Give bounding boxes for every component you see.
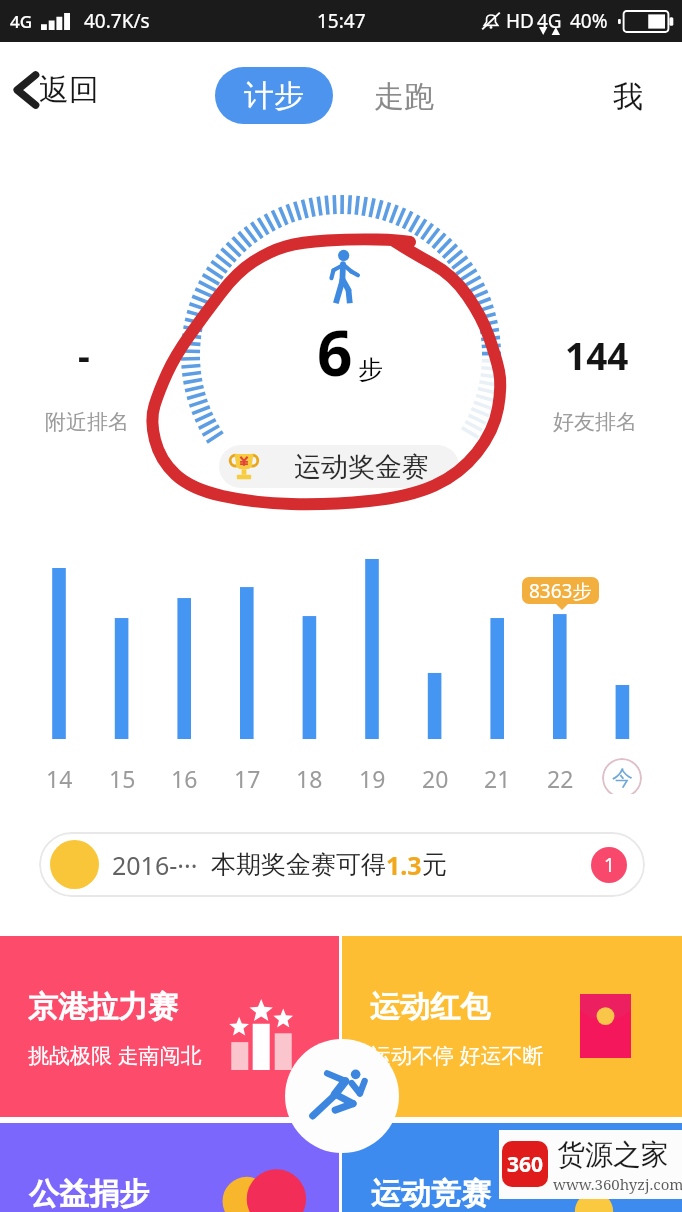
staticText: 15 bbox=[109, 763, 136, 794]
button[interactable]: Start running bbox=[285, 1039, 399, 1153]
button[interactable]: 走跑 bbox=[368, 70, 440, 124]
staticText: 今 bbox=[612, 765, 633, 791]
staticText: HD bbox=[506, 8, 534, 34]
staticText: 1.3 bbox=[386, 848, 422, 882]
button[interactable]: 公益捐步 bbox=[0, 1123, 339, 1212]
staticText: 运动红包 bbox=[370, 988, 490, 1026]
staticText: 40.7K/s bbox=[84, 8, 150, 34]
staticText: 20 bbox=[422, 763, 449, 794]
staticText: 本期奖金赛可得 bbox=[211, 849, 386, 880]
staticText: www.360hyzj.com bbox=[553, 1174, 682, 1194]
staticText: 运动奖金赛 bbox=[294, 450, 429, 484]
staticText: 6 bbox=[317, 310, 353, 394]
staticText: 京港拉力赛 bbox=[28, 988, 178, 1026]
staticText: 8363步 bbox=[529, 578, 592, 604]
button[interactable]: 运动红包 bbox=[342, 936, 682, 1117]
staticText: 元 bbox=[422, 849, 447, 880]
staticText: 走跑 bbox=[374, 78, 434, 116]
staticText: 运动竞赛 bbox=[371, 1175, 491, 1212]
staticText: 15:47 bbox=[317, 8, 366, 34]
staticText: 我 bbox=[613, 78, 643, 116]
button[interactable]: 运动竞赛 bbox=[342, 1123, 682, 1212]
staticText: 144 bbox=[565, 330, 629, 380]
button[interactable]: 我 bbox=[607, 70, 649, 124]
staticText: 360 bbox=[507, 1150, 544, 1179]
staticText: 4G bbox=[10, 10, 33, 33]
staticText: 2016-··· bbox=[112, 848, 198, 882]
staticText: 附近排名 bbox=[45, 409, 129, 435]
button[interactable]: 返回 bbox=[8, 63, 105, 117]
staticText: 16 bbox=[171, 763, 198, 794]
button[interactable]: 今 bbox=[602, 758, 642, 798]
staticText: - bbox=[78, 330, 90, 380]
staticText: 18 bbox=[296, 763, 323, 794]
button[interactable]: 2016-··· bbox=[39, 832, 645, 897]
staticText: 计步 bbox=[244, 77, 304, 115]
staticText: 22 bbox=[547, 763, 574, 794]
button[interactable]: 运动奖金赛 bbox=[219, 445, 459, 488]
staticText: 40% bbox=[570, 8, 608, 34]
staticText: 14 bbox=[46, 763, 73, 794]
staticText: 公益捐步 bbox=[29, 1175, 149, 1212]
staticText: 运动不停 好运不断 bbox=[370, 1041, 544, 1070]
button[interactable]: 京港拉力赛 bbox=[0, 936, 339, 1117]
staticText: 1 bbox=[604, 852, 615, 878]
staticText: 挑战极限 走南闯北 bbox=[28, 1041, 202, 1070]
staticText: 19 bbox=[359, 763, 386, 794]
staticText: 返回 bbox=[39, 71, 99, 109]
staticText: 货源之家 bbox=[557, 1137, 669, 1172]
button[interactable]: 计步 bbox=[215, 67, 333, 124]
staticText: 21 bbox=[484, 763, 511, 794]
staticText: 好友排名 bbox=[553, 409, 637, 435]
staticText: 4G bbox=[537, 8, 562, 34]
staticText: 17 bbox=[234, 763, 261, 794]
staticText: 步 bbox=[358, 354, 383, 385]
